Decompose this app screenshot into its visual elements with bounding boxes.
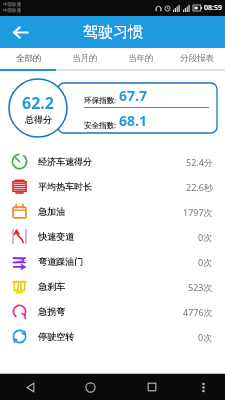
button[interactable]: 当月的 xyxy=(57,48,113,69)
button[interactable]: Recents xyxy=(121,374,182,400)
button[interactable]: 快速变道 xyxy=(0,224,225,249)
staticText: 62.2 xyxy=(22,92,54,114)
button[interactable]: Home xyxy=(60,374,121,400)
staticText: 安全指数: xyxy=(84,120,117,130)
staticText: 0次 xyxy=(198,256,213,268)
staticText: 08:59 xyxy=(204,3,222,13)
staticText: 中国联通 xyxy=(3,8,21,14)
staticText: 52.4分 xyxy=(186,156,213,168)
staticText: 68.1 xyxy=(119,111,147,130)
staticText: 0次 xyxy=(198,231,213,243)
staticText: 0次 xyxy=(198,331,213,343)
staticText: 平均热车时长 xyxy=(38,181,92,192)
staticText: 总得分 xyxy=(25,114,52,125)
button[interactable]: 分段报表 xyxy=(169,48,225,69)
staticText: 中国联通 xyxy=(3,2,21,8)
staticText: 急加油 xyxy=(38,206,65,217)
staticText: 快速变道 xyxy=(38,231,74,242)
button[interactable]: 弯道踩油门 xyxy=(0,249,225,274)
button[interactable]: 急刹车 xyxy=(0,274,225,299)
staticText: 急刹车 xyxy=(38,281,65,292)
staticText: 523次 xyxy=(188,281,213,293)
button[interactable]: 经济车速得分 xyxy=(0,149,225,174)
staticText: 67.7 xyxy=(119,86,147,105)
staticText: 当月的 xyxy=(72,53,98,64)
staticText: 1797次 xyxy=(183,206,213,218)
staticText: 当年的 xyxy=(128,53,154,64)
button[interactable]: 急拐弯 xyxy=(0,299,225,324)
staticText: 分段报表 xyxy=(180,53,214,64)
button[interactable]: 停驶空转 xyxy=(0,324,225,349)
button[interactable]: 全部的 xyxy=(0,48,57,69)
button[interactable]: 当年的 xyxy=(113,48,169,69)
staticText: 22.6秒 xyxy=(186,181,213,193)
button[interactable]: 急加油 xyxy=(0,199,225,224)
staticText: 弯道踩油门 xyxy=(38,256,83,267)
staticText: 经济车速得分 xyxy=(38,156,92,167)
button[interactable]: Back xyxy=(0,374,60,400)
staticText: 环保指数: xyxy=(84,95,117,105)
button[interactable]: More options xyxy=(182,374,225,400)
staticText: 驾驶习惯 xyxy=(83,23,143,42)
button[interactable]: 平均热车时长 xyxy=(0,174,225,199)
staticText: 停驶空转 xyxy=(38,331,74,342)
button[interactable]: Back xyxy=(8,20,32,44)
staticText: 全部的 xyxy=(16,53,42,64)
staticText: 4776次 xyxy=(183,306,213,318)
staticText: 急拐弯 xyxy=(38,306,65,317)
